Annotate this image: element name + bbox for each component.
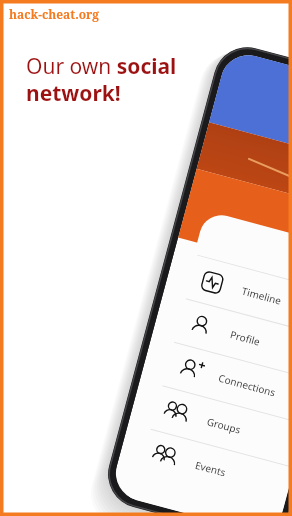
button[interactable]: Profile [167,380,279,418]
button[interactable]: Groups [143,466,255,504]
button[interactable]: Timeline [178,338,290,376]
button[interactable]: Connections [155,424,267,462]
